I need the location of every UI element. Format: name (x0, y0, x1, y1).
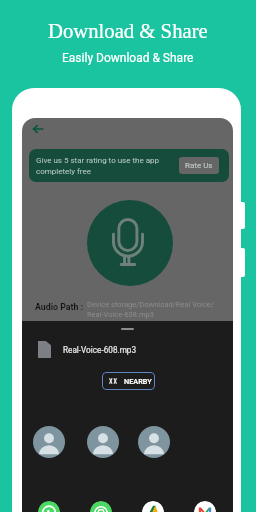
staticText: Device storage/Download/Real Voice/ Real… (87, 300, 214, 318)
staticText: Give us 5 star rating to use the app com… (36, 156, 175, 176)
staticText: Audio Path : (35, 302, 84, 312)
staticText: Easily Download & Share (62, 51, 194, 65)
button[interactable]: Share (142, 501, 164, 512)
button[interactable]: Record (87, 200, 173, 286)
staticText: Real-Voice-608.mp3 (63, 345, 137, 355)
button[interactable]: Contact (138, 426, 170, 458)
button[interactable]: Share (38, 501, 60, 512)
staticText: Download & Share (48, 20, 208, 43)
button[interactable]: Back (28, 119, 47, 138)
staticText: Rate Us (185, 161, 213, 170)
button[interactable]: Contact (87, 426, 119, 458)
button[interactable]: Share (194, 501, 216, 512)
staticText: NEARBY (124, 377, 152, 386)
button[interactable]: NEARBY (102, 372, 155, 390)
button[interactable]: Real-Voice-608.mp3 (22, 339, 233, 360)
button[interactable]: Rate Us (179, 157, 219, 174)
button[interactable]: Contact (33, 426, 65, 458)
button[interactable]: Share (90, 501, 112, 512)
